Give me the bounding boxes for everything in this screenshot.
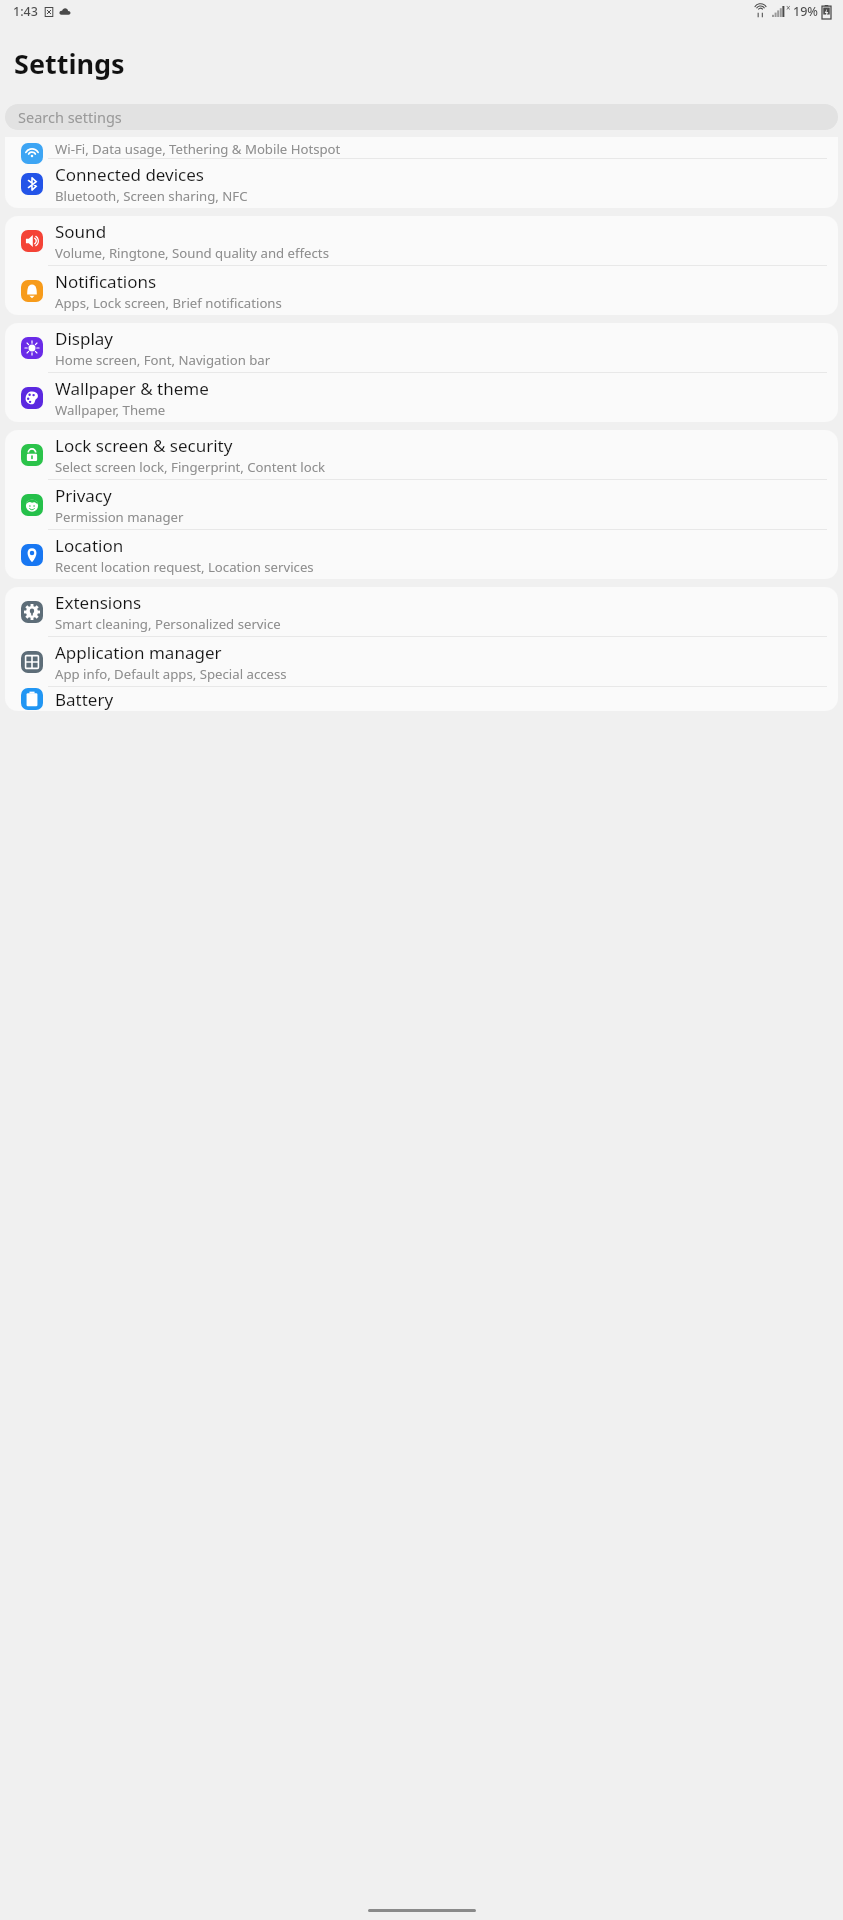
- button[interactable]: Extensions: [5, 587, 838, 636]
- staticText: 19%: [793, 3, 818, 20]
- staticText: Search settings: [18, 107, 122, 127]
- button[interactable]: Display: [5, 323, 838, 372]
- button[interactable]: Lock screen & security: [5, 430, 838, 479]
- staticText: Wi-Fi, Data usage, Tethering & Mobile Ho…: [55, 140, 341, 158]
- staticText: Location: [55, 534, 124, 557]
- staticText: Application manager: [55, 641, 222, 664]
- staticText: Recent location request, Location servic…: [55, 558, 314, 576]
- staticText: Sound: [55, 220, 107, 243]
- button[interactable]: Sound: [5, 216, 838, 265]
- staticText: Smart cleaning, Personalized service: [55, 615, 281, 633]
- staticText: App info, Default apps, Special access: [55, 665, 287, 683]
- button[interactable]: Location: [5, 530, 838, 579]
- staticText: Bluetooth, Screen sharing, NFC: [55, 187, 248, 205]
- staticText: Lock screen & security: [55, 434, 233, 457]
- staticText: Settings: [14, 45, 125, 82]
- button[interactable]: Wallpaper & theme: [5, 373, 838, 422]
- staticText: Extensions: [55, 591, 142, 614]
- staticText: Home screen, Font, Navigation bar: [55, 351, 271, 369]
- staticText: Connected devices: [55, 163, 205, 186]
- staticText: ×: [786, 2, 791, 13]
- button[interactable]: Notifications: [5, 266, 838, 315]
- button[interactable]: Search settings: [5, 104, 838, 130]
- staticText: 1:43: [13, 3, 38, 20]
- button[interactable]: Connected devices: [5, 159, 838, 208]
- staticText: Battery: [55, 688, 114, 711]
- button[interactable]: Application manager: [5, 637, 838, 686]
- staticText: Notifications: [55, 270, 157, 293]
- staticText: Privacy: [55, 484, 112, 507]
- button[interactable]: Wi-Fi, Data usage, Tethering & Mobile Ho…: [5, 137, 838, 158]
- staticText: Select screen lock, Fingerprint, Content…: [55, 458, 326, 476]
- staticText: Wallpaper & theme: [55, 377, 209, 400]
- staticText: Permission manager: [55, 508, 184, 526]
- button[interactable]: Battery: [5, 687, 838, 711]
- staticText: Wallpaper, Theme: [55, 401, 166, 419]
- staticText: Volume, Ringtone, Sound quality and effe…: [55, 244, 329, 262]
- staticText: Apps, Lock screen, Brief notifications: [55, 294, 282, 312]
- staticText: Display: [55, 327, 113, 350]
- button[interactable]: Privacy: [5, 480, 838, 529]
